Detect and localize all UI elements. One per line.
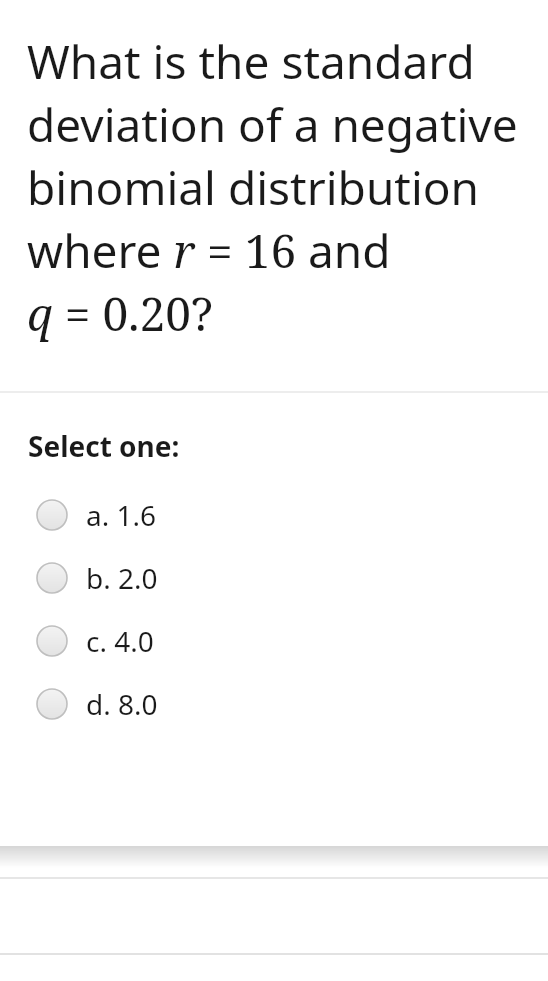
staticText: Select one: xyxy=(28,427,180,465)
staticText: deviation of a negative xyxy=(27,93,548,156)
staticText: What is the standard xyxy=(27,30,548,93)
button[interactable]: c. 4.0 xyxy=(0,609,548,672)
staticText: binomial distribution xyxy=(27,156,548,219)
button[interactable]: d. 8.0 xyxy=(0,672,548,735)
staticText: b. 2.0 xyxy=(86,559,158,597)
staticText: where r = 16 and xyxy=(27,219,548,282)
staticText: c. 4.0 xyxy=(86,622,154,660)
staticText: d. 8.0 xyxy=(86,685,158,723)
staticText: a. 1.6 xyxy=(86,496,157,534)
staticText: q = 0.20? xyxy=(27,282,548,345)
button[interactable]: b. 2.0 xyxy=(0,546,548,609)
button[interactable]: a. 1.6 xyxy=(0,483,548,546)
